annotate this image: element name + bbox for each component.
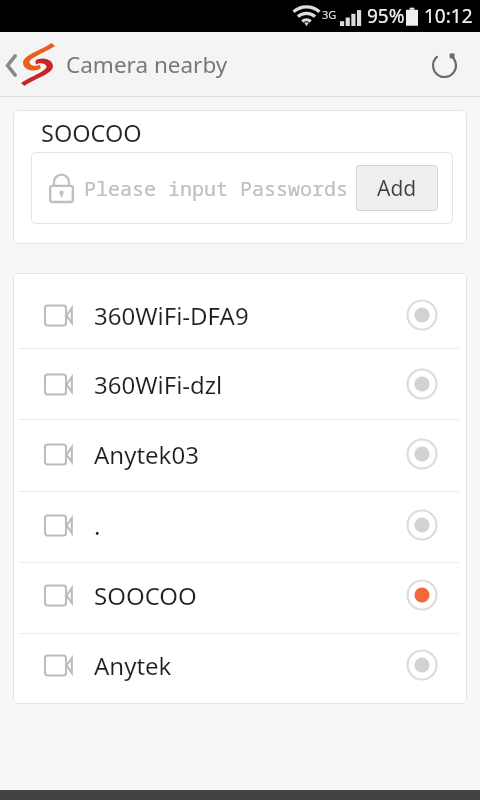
button[interactable]: Anytek03 (13, 419, 467, 490)
button[interactable]: Back (0, 45, 21, 85)
staticText: SOOCOO (94, 579, 197, 612)
staticText: . (94, 509, 101, 542)
button[interactable]: . (13, 491, 467, 562)
staticText: 360WiFi-DFA9 (94, 299, 249, 332)
button[interactable]: 360WiFi-dzl (13, 348, 467, 419)
staticText: Please input Passwords (84, 175, 348, 202)
button[interactable]: Anytek (13, 633, 467, 704)
button[interactable]: Add (356, 165, 438, 211)
staticText: 10:12 (424, 3, 473, 29)
staticText: 95% (367, 3, 405, 29)
button[interactable]: SOOCOO (13, 562, 467, 633)
staticText: Add (377, 174, 417, 203)
button[interactable]: Refresh (423, 44, 465, 86)
staticText: SOOCOO (41, 117, 142, 149)
staticText: Anytek03 (94, 438, 199, 471)
staticText: Anytek (94, 649, 172, 682)
staticText: 3G (322, 7, 337, 22)
staticText: Camera nearby (66, 49, 228, 80)
button[interactable]: 360WiFi-DFA9 (13, 273, 467, 348)
staticText: 360WiFi-dzl (94, 368, 223, 401)
